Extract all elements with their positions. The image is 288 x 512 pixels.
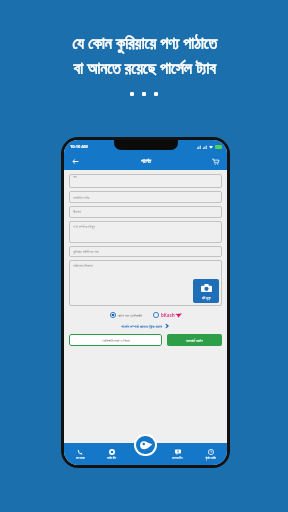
staticText: মোবাইল নম্বর	[73, 195, 90, 200]
staticText: কনফার্ম করুন	[186, 338, 203, 343]
button[interactable]: Back	[70, 156, 81, 167]
button[interactable]: কুরিয়ার সার্ভিসের নাম	[69, 246, 222, 257]
staticText: পার্সেল	[141, 159, 151, 164]
button[interactable]: Take photo	[193, 279, 219, 303]
button[interactable]: কল করুন	[64, 443, 96, 465]
button[interactable]: ঠিকানা	[69, 206, 222, 218]
button[interactable]: মেসেজ দিন	[161, 443, 194, 465]
staticText: মেসেজ দিন	[172, 456, 183, 460]
button[interactable]: New order	[136, 436, 155, 454]
button[interactable]: Cart	[210, 156, 221, 167]
staticText: ডেলিভারি চার্জ ও নিয়ম	[102, 338, 130, 343]
button[interactable]: নাম	[69, 174, 222, 188]
button[interactable]: ডেলিভারি চার্জ ও নিয়ম	[69, 334, 162, 346]
button[interactable]: পণ্য সর্ম্পকে লিখুন	[69, 221, 222, 243]
staticText: পূর্বের অর্ডার	[205, 456, 216, 460]
button[interactable]: মোবাইল নম্বর	[69, 191, 222, 203]
staticText: পাঠানোর ঠিকানা	[73, 263, 93, 268]
button[interactable]: কনফার্ম করুন	[167, 334, 222, 346]
staticText: যে কোন কুরিয়ায়ে পণ্য পাঠাতে	[72, 32, 217, 54]
staticText: ছবি তুলুন	[202, 296, 211, 300]
staticText: কল করুন	[76, 456, 85, 460]
staticText: 10:10 AM	[70, 144, 88, 149]
button[interactable]: পার্সেল সম্পর্কে জানতে ক্লিক করুন	[69, 323, 222, 329]
staticText: ক্যাশ অন ডেলিভারি	[118, 313, 142, 318]
staticText: বা আনতে রয়েছে পার্সেল ট্যাব	[73, 57, 216, 79]
staticText: ঠিকানা	[73, 210, 81, 214]
staticText: নাম	[73, 175, 77, 178]
button[interactable]: ক্যাশ অন ডেলিভারি	[110, 312, 142, 318]
staticText: অর্ডার দিন	[107, 456, 117, 460]
staticText: কুরিয়ার সার্ভিসের নাম	[73, 249, 99, 254]
button[interactable]: পূর্বের অর্ডার	[194, 443, 227, 465]
staticText: পার্সেল সম্পর্কে জানতে ক্লিক করুন	[121, 324, 162, 329]
staticText: bKash	[161, 312, 175, 318]
staticText: পণ্য সর্ম্পকে লিখুন	[73, 224, 95, 229]
button[interactable]: অর্ডার দিন	[96, 443, 128, 465]
button[interactable]: bKash	[153, 312, 182, 318]
